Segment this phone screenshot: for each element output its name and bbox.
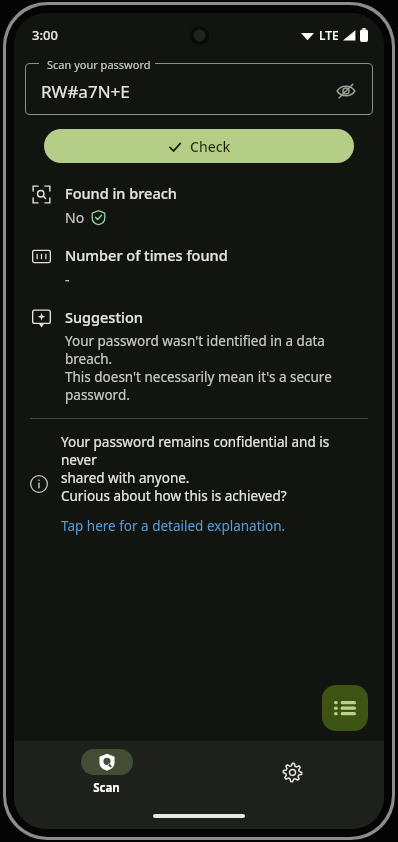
button[interactable]: Scan your password — [25, 63, 373, 115]
staticText: Tap here for a detailed explanation. — [61, 517, 286, 535]
staticText: Your password remains confidential and i… — [61, 433, 368, 505]
staticText: Suggestion — [65, 307, 143, 327]
staticText: LTE — [319, 27, 339, 43]
staticText: - — [65, 270, 70, 289]
staticText: Check — [190, 137, 231, 156]
staticText: Number of times found — [65, 245, 228, 265]
button[interactable]: Password list — [322, 685, 368, 731]
button[interactable]: Scan — [14, 741, 199, 803]
staticText: Scan your password — [47, 57, 151, 72]
button[interactable]: Check — [44, 129, 354, 163]
button[interactable]: Tap here for a detailed explanation. — [61, 517, 286, 535]
button[interactable]: Show password — [329, 74, 363, 108]
staticText: Your password wasn't identified in a dat… — [65, 332, 332, 404]
staticText: Scan — [93, 780, 120, 796]
staticText: Found in breach — [65, 183, 177, 203]
staticText: No — [65, 208, 85, 227]
button[interactable]: Settings — [199, 741, 384, 803]
staticText: RW#a7N+E — [41, 80, 130, 103]
staticText: 3:00 — [32, 26, 58, 44]
